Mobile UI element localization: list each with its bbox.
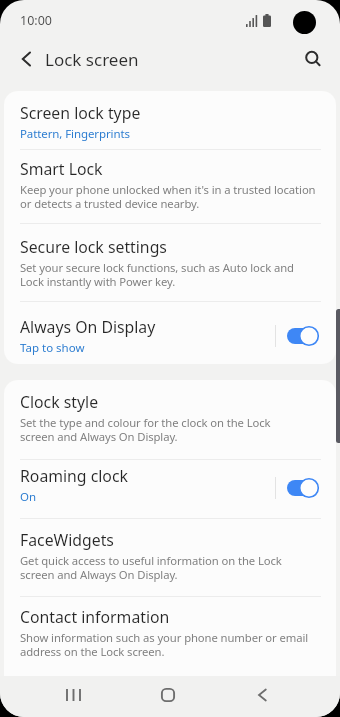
button[interactable]: Clock style <box>4 380 336 459</box>
button[interactable]: Screen lock type <box>4 91 336 149</box>
button[interactable]: Contact information <box>4 597 336 676</box>
button[interactable]: Roaming clock <box>4 460 336 518</box>
staticText: On <box>20 489 37 505</box>
staticText: Set your secure lock functions, such as … <box>20 260 294 289</box>
button[interactable]: Secure lock settings <box>4 224 336 301</box>
staticText: Smart Lock <box>20 158 103 180</box>
staticText: Lock screen <box>45 48 139 71</box>
button[interactable] <box>22 52 31 66</box>
button[interactable]: Always On Display <box>4 302 336 364</box>
staticText: Roaming clock <box>20 465 128 487</box>
staticText: Secure lock settings <box>20 236 167 258</box>
staticText: 10:00 <box>20 12 52 29</box>
staticText: Always On Display <box>20 316 156 338</box>
button[interactable]: FaceWidgets <box>4 519 336 596</box>
button[interactable] <box>302 49 322 69</box>
staticText: Set the type and colour for the clock on… <box>20 415 271 444</box>
staticText: Pattern, Fingerprints <box>20 126 130 142</box>
button[interactable] <box>258 689 267 702</box>
staticText: Show information such as your phone numb… <box>20 630 309 659</box>
staticText: FaceWidgets <box>20 529 114 551</box>
staticText: Keep your phone unlocked when it's in a … <box>20 182 316 211</box>
button[interactable] <box>66 688 82 702</box>
staticText: Get quick access to useful information o… <box>20 553 282 582</box>
staticText: Clock style <box>20 391 99 413</box>
staticText: Tap to show <box>20 340 85 356</box>
staticText: Contact information <box>20 606 170 628</box>
button[interactable]: Smart Lock <box>4 150 336 223</box>
staticText: Screen lock type <box>20 102 141 124</box>
button[interactable] <box>161 688 175 702</box>
